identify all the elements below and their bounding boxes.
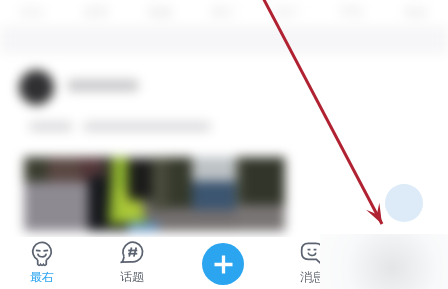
button[interactable]: 我的 (379, 242, 424, 282)
staticText: 最右 (30, 269, 54, 284)
button[interactable]: Create post (202, 243, 244, 285)
button[interactable]: 话题 (109, 242, 154, 282)
button[interactable]: 消息 (289, 242, 334, 282)
button[interactable]: 最右 (19, 242, 64, 282)
button[interactable]: 段子 (256, 4, 320, 19)
staticText: 消息 (300, 269, 324, 284)
button[interactable]: 视频 (128, 4, 192, 19)
staticText: 话题 (120, 269, 144, 284)
